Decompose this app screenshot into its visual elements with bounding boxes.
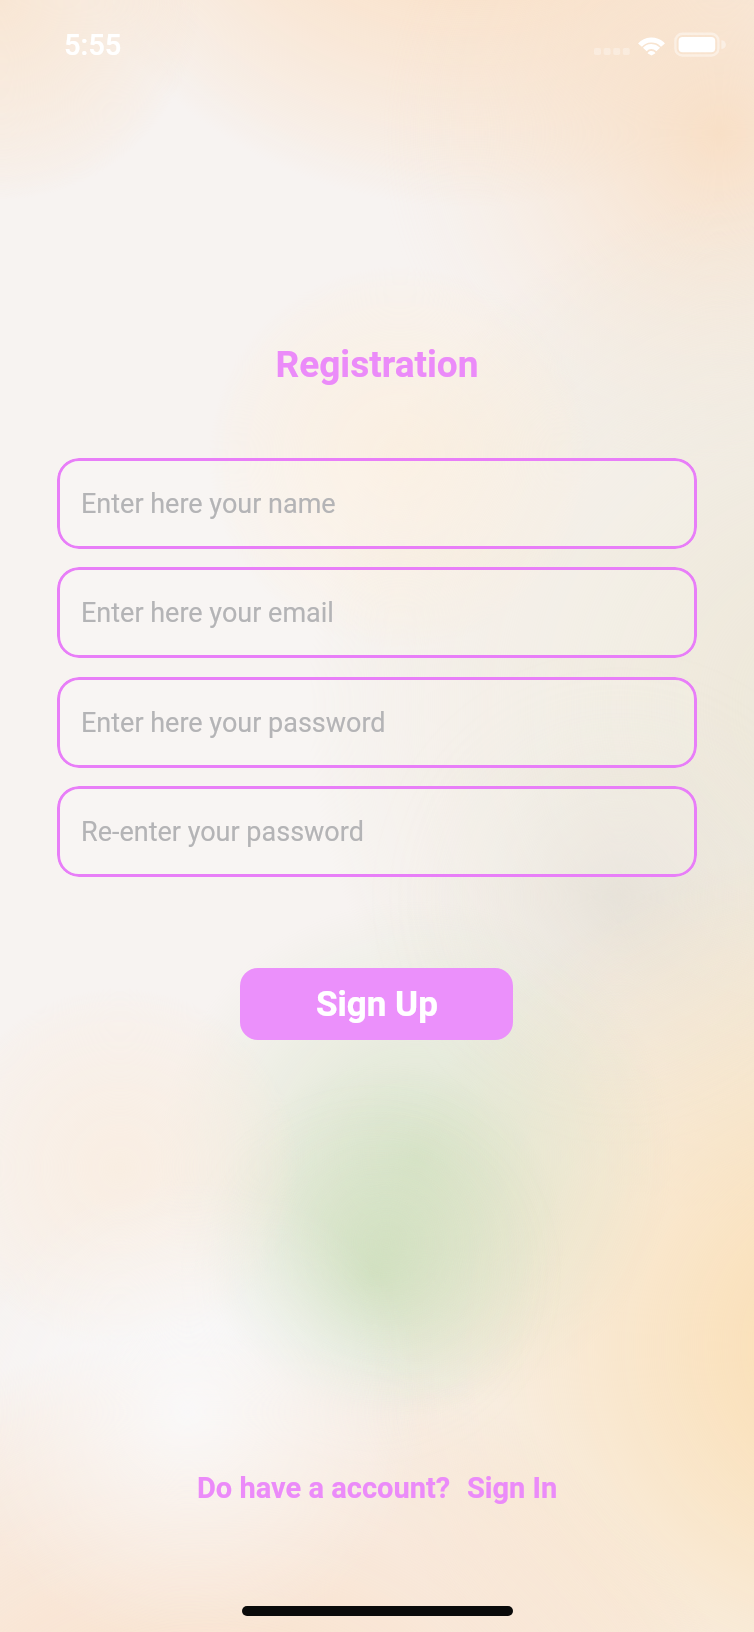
staticText: Sign In xyxy=(467,1471,558,1505)
other: Battery xyxy=(674,32,726,58)
staticText: Enter here your password xyxy=(81,707,386,739)
button[interactable]: Enter here your name xyxy=(57,458,697,549)
button[interactable]: Enter here your password xyxy=(57,677,697,768)
staticText: Do have a account? xyxy=(197,1471,451,1505)
staticText: Enter here your name xyxy=(81,488,336,520)
button[interactable]: Sign Up xyxy=(240,968,513,1040)
staticText: Registration xyxy=(0,343,754,386)
other: Cellular signal xyxy=(594,48,629,56)
staticText: Re-enter your password xyxy=(81,816,364,848)
staticText: Sign Up xyxy=(316,984,438,1025)
button[interactable]: Sign In xyxy=(467,1471,558,1505)
staticText: 5:55 xyxy=(64,28,122,62)
staticText: Enter here your email xyxy=(81,597,334,629)
other: Wi-Fi xyxy=(636,33,668,57)
button[interactable]: Enter here your email xyxy=(57,567,697,658)
button[interactable]: Re-enter your password xyxy=(57,786,697,877)
